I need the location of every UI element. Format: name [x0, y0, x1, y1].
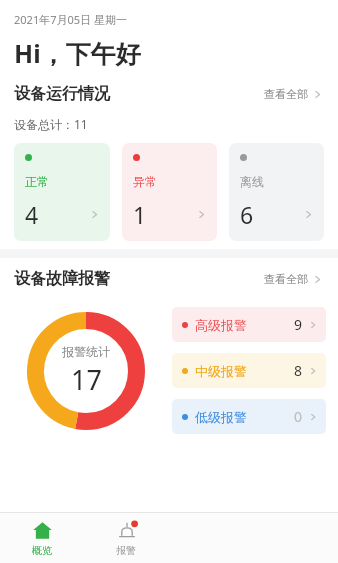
staticText: 1 [133, 199, 147, 230]
button[interactable]: 低级报警 [172, 399, 326, 434]
button[interactable]: 查看全部 [262, 268, 324, 290]
staticText: 报警统计 [62, 344, 110, 359]
staticText: 中级报警 [195, 363, 247, 379]
button[interactable]: 正常 [14, 143, 110, 241]
button[interactable]: 查看全部 [262, 83, 324, 105]
staticText: 设备总计：11 [14, 116, 88, 132]
staticText: 查看全部 [264, 272, 308, 286]
button[interactable]: 概览 [0, 515, 84, 562]
staticText: 正常 [25, 174, 49, 189]
button[interactable]: 离线 [229, 143, 324, 241]
staticText: 设备故障报警 [14, 269, 110, 289]
staticText: 4 [25, 199, 39, 230]
button[interactable]: 高级报警 [172, 307, 326, 342]
staticText: 9 [294, 315, 303, 334]
staticText: 6 [240, 199, 254, 230]
staticText: 异常 [133, 174, 157, 189]
staticText: 0 [294, 407, 303, 426]
staticText: 8 [294, 361, 303, 380]
staticText: 低级报警 [195, 409, 247, 425]
staticText: 概览 [32, 544, 52, 557]
staticText: 设备运行情况 [14, 84, 110, 104]
staticText: 2021年7月05日 星期一 [14, 12, 127, 27]
staticText: 离线 [240, 174, 264, 189]
button[interactable]: 报警 [84, 515, 168, 562]
button[interactable]: 中级报警 [172, 353, 326, 388]
staticText: 高级报警 [195, 317, 247, 333]
staticText: 17 [71, 361, 102, 398]
staticText: Hi，下午好 [14, 36, 141, 70]
staticText: 查看全部 [264, 87, 308, 101]
staticText: 报警 [116, 544, 136, 557]
button[interactable]: 异常 [122, 143, 217, 241]
